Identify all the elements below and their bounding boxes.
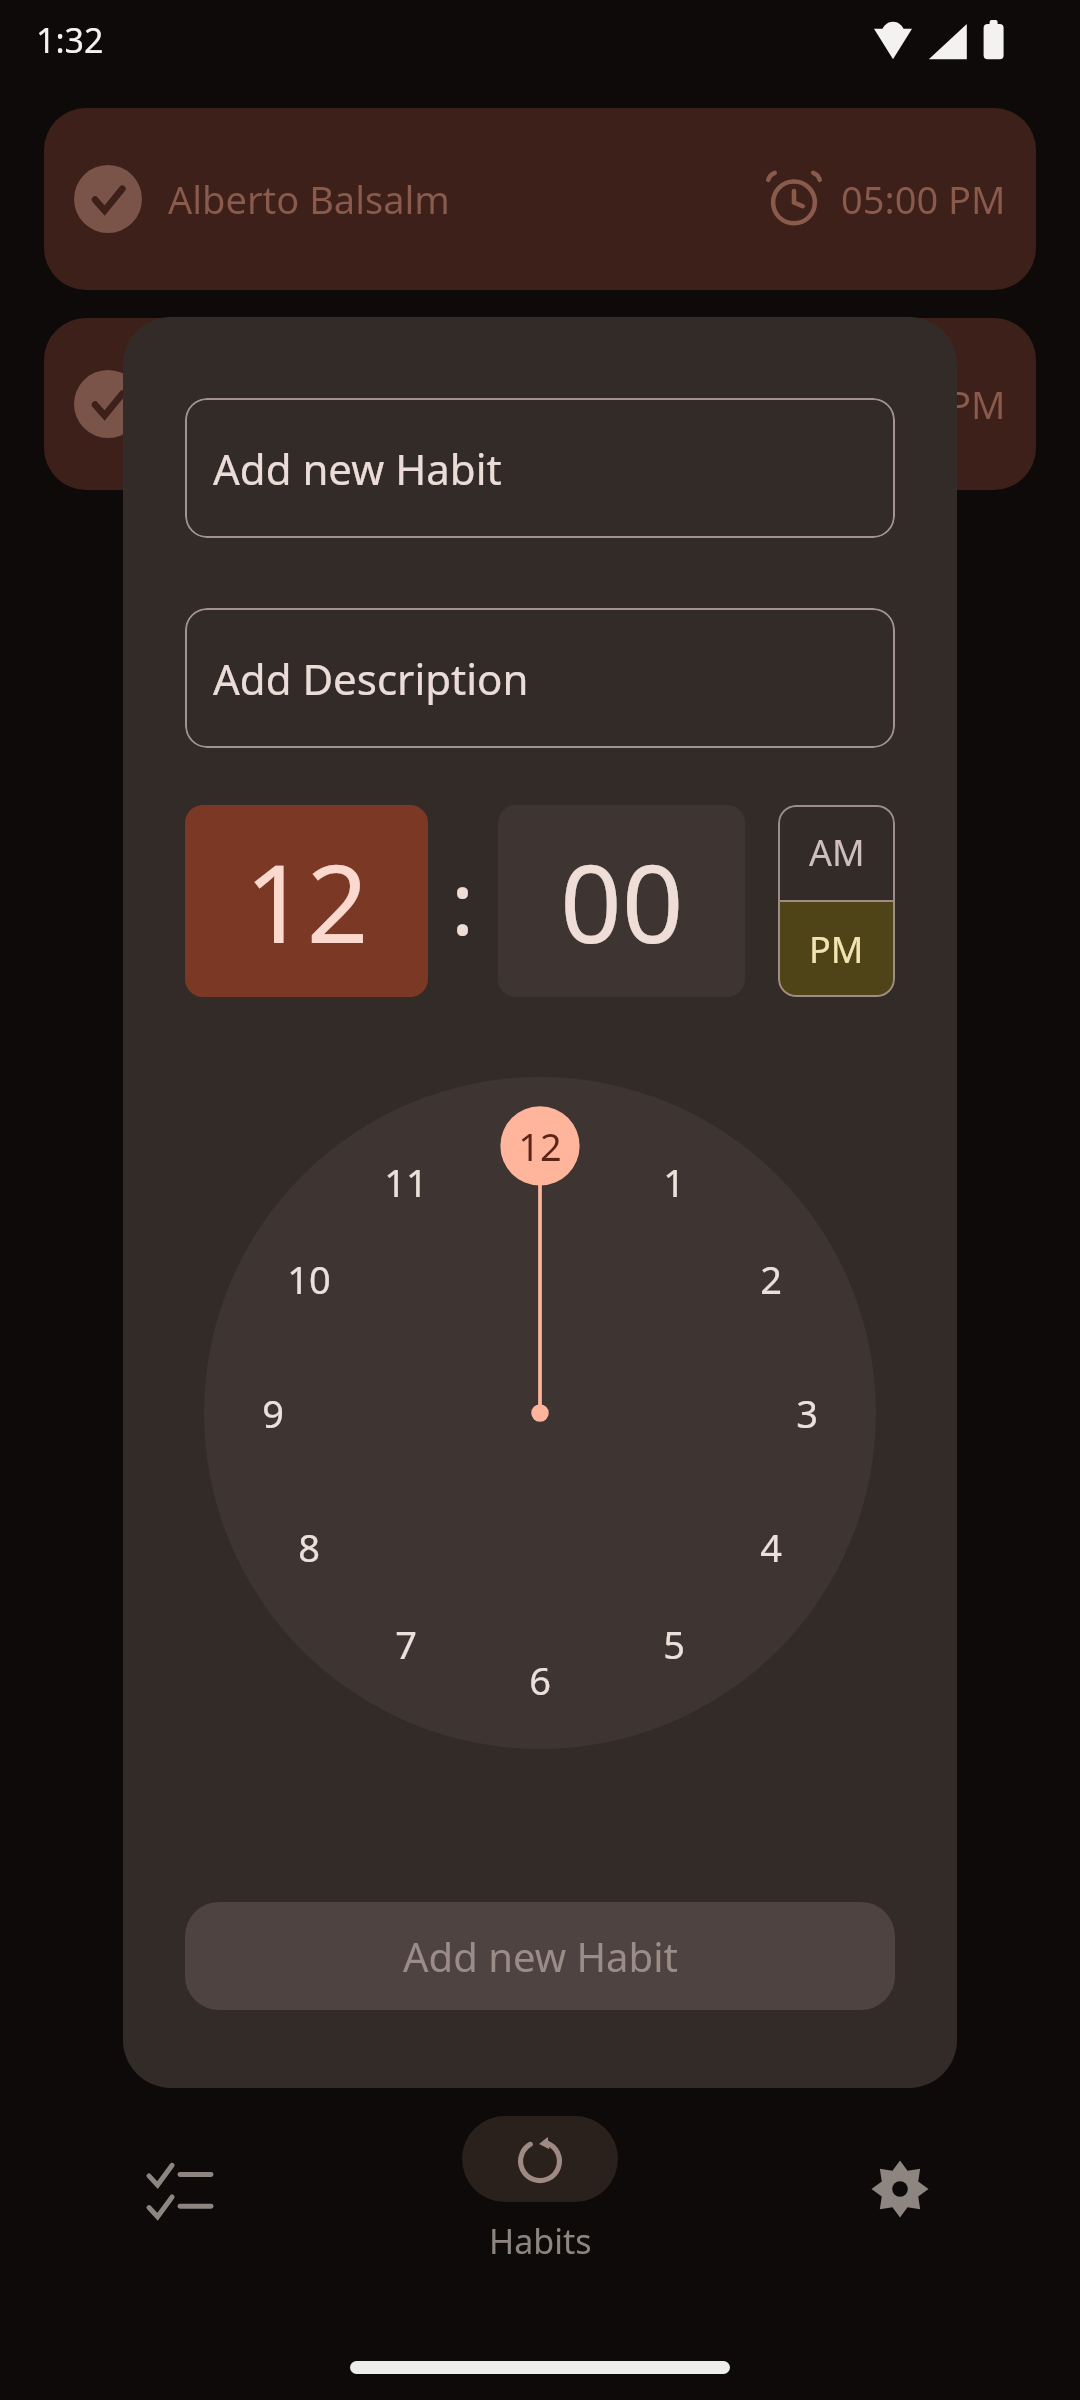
staticText: 05:00 PM xyxy=(841,378,1006,430)
staticText: Habits xyxy=(489,2218,592,2264)
button[interactable]: Tasks xyxy=(0,2080,360,2280)
staticText: 1:32 xyxy=(36,17,104,63)
staticText: Alberto Balsalm xyxy=(168,173,450,225)
staticText: AM xyxy=(809,828,865,877)
button[interactable]: Add new Habit xyxy=(185,1902,895,2010)
button[interactable]: Alberto Balsalm xyxy=(44,108,1036,290)
staticText: 6 xyxy=(529,1654,551,1706)
staticText: 00 xyxy=(560,828,684,975)
button[interactable]: 12 xyxy=(204,1077,876,1749)
staticText: 05:00 PM xyxy=(841,173,1006,225)
staticText: : xyxy=(451,843,475,960)
staticText: 9 xyxy=(262,1387,284,1439)
button[interactable]: Add new Habit xyxy=(185,398,895,538)
button[interactable]: Alberto Balsalm xyxy=(44,318,1036,490)
staticText: 12 xyxy=(245,828,369,975)
staticText: 7 xyxy=(395,1618,417,1670)
staticText: Add Description xyxy=(213,650,529,707)
staticText: Add new Habit xyxy=(213,440,502,497)
button[interactable]: Settings xyxy=(720,2080,1080,2280)
button[interactable]: Habits xyxy=(360,2080,720,2280)
button[interactable]: 12 xyxy=(185,805,428,997)
staticText: Alberto Balsalm xyxy=(168,378,450,430)
button[interactable]: AM xyxy=(778,805,895,900)
button[interactable]: Add Description xyxy=(185,608,895,748)
staticText: 1 xyxy=(663,1156,685,1208)
staticText: Add new Habit xyxy=(403,1929,678,1983)
staticText: 11 xyxy=(384,1156,428,1208)
staticText: 12 xyxy=(518,1120,562,1172)
staticText: 2 xyxy=(760,1253,782,1305)
staticText: 5 xyxy=(663,1618,685,1670)
staticText: 8 xyxy=(298,1521,320,1573)
staticText: 3 xyxy=(796,1387,818,1439)
staticText: PM xyxy=(809,925,864,974)
button[interactable]: PM xyxy=(778,902,895,997)
staticText: 10 xyxy=(287,1253,331,1305)
button[interactable]: 00 xyxy=(498,805,745,997)
staticText: 4 xyxy=(760,1521,782,1573)
